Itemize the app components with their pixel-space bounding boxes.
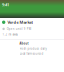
staticText: Local farm sourced [19, 52, 43, 55]
staticText: 9:41 [2, 2, 9, 7]
staticText: Verde Market [7, 20, 33, 25]
staticText: About [19, 42, 28, 45]
staticText: Fresh produce daily [19, 47, 46, 50]
staticText: Open until 9 PM [7, 27, 31, 31]
staticText: 1.2 mi away [2, 33, 17, 36]
